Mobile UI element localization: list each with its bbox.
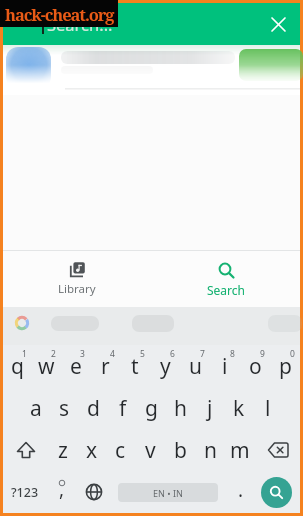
button[interactable]: c: [106, 429, 135, 471]
staticText: d: [87, 394, 100, 423]
staticText: b: [174, 436, 187, 465]
button[interactable]: Search: [151, 251, 300, 307]
staticText: Search...: [47, 13, 113, 35]
staticText: r: [101, 352, 110, 381]
button[interactable]: z: [48, 429, 77, 471]
staticText: Search: [207, 282, 245, 298]
button[interactable]: u: [180, 345, 210, 387]
staticText: t: [131, 352, 139, 381]
staticText: x: [86, 436, 98, 465]
staticText: ,: [59, 476, 65, 502]
staticText: 3: [80, 348, 85, 360]
button[interactable]: .: [226, 471, 256, 513]
staticText: w: [38, 352, 55, 381]
button[interactable]: k: [224, 387, 253, 429]
button[interactable]: b: [165, 429, 195, 471]
staticText: 7: [200, 348, 205, 360]
staticText: i: [222, 352, 228, 381]
staticText: 9: [260, 348, 265, 360]
button[interactable]: p: [270, 345, 300, 387]
button[interactable]: w: [32, 345, 61, 387]
button[interactable]: v: [135, 429, 165, 471]
staticText: p: [279, 352, 292, 381]
staticText: Library: [58, 281, 96, 297]
staticText: a: [30, 394, 42, 423]
staticText: k: [233, 394, 245, 423]
staticText: 0: [290, 348, 295, 360]
button[interactable]: y: [150, 345, 180, 387]
staticText: hack-cheat.org: [5, 3, 114, 25]
staticText: e: [70, 352, 82, 381]
button[interactable]: EN • IN: [111, 471, 226, 513]
button[interactable]: [3, 45, 300, 95]
staticText: o: [249, 352, 262, 381]
staticText: 4: [110, 348, 115, 360]
button[interactable]: f: [108, 387, 137, 429]
staticText: s: [59, 394, 70, 423]
button[interactable]: j: [195, 387, 224, 429]
button[interactable]: r: [90, 345, 120, 387]
button[interactable]: t: [120, 345, 150, 387]
button[interactable]: [3, 429, 48, 471]
staticText: z: [58, 436, 68, 465]
staticText: q: [11, 352, 24, 381]
button[interactable]: d: [79, 387, 108, 429]
staticText: h: [174, 394, 187, 423]
staticText: u: [189, 352, 202, 381]
button[interactable]: [257, 3, 300, 45]
staticText: 2: [51, 348, 56, 360]
staticText: ?123: [11, 484, 39, 501]
button[interactable]: g: [137, 387, 166, 429]
staticText: f: [119, 394, 127, 423]
button[interactable]: x: [77, 429, 106, 471]
button[interactable]: [256, 471, 300, 513]
button[interactable]: a: [21, 387, 50, 429]
staticText: v: [145, 436, 156, 465]
button[interactable]: m: [225, 429, 255, 471]
button[interactable]: [255, 429, 300, 471]
staticText: m: [230, 436, 250, 465]
button[interactable]: i: [210, 345, 240, 387]
staticText: EN • IN: [153, 487, 183, 499]
staticText: 8: [230, 348, 235, 360]
staticText: n: [204, 436, 217, 465]
button[interactable]: Library: [3, 251, 151, 307]
button[interactable]: o: [240, 345, 270, 387]
button[interactable]: q: [3, 345, 32, 387]
staticText: 6: [170, 348, 175, 360]
staticText: .: [238, 477, 244, 503]
staticText: l: [265, 394, 271, 423]
button[interactable]: ?123: [3, 471, 47, 513]
button[interactable]: ,: [47, 471, 77, 513]
staticText: 1: [22, 348, 27, 360]
button[interactable]: n: [195, 429, 225, 471]
staticText: j: [207, 394, 213, 423]
staticText: 5: [140, 348, 145, 360]
button[interactable]: h: [166, 387, 195, 429]
button[interactable]: s: [50, 387, 79, 429]
staticText: g: [145, 394, 158, 423]
staticText: c: [115, 436, 126, 465]
button[interactable]: [77, 471, 111, 513]
button[interactable]: l: [253, 387, 282, 429]
staticText: y: [160, 352, 171, 381]
button[interactable]: e: [61, 345, 90, 387]
